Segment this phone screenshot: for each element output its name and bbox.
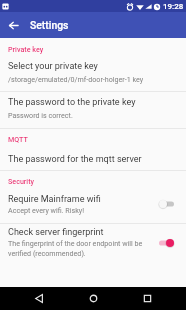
staticText: Settings — [30, 19, 69, 31]
button[interactable]: Require Mainframe wifi — [0, 194, 186, 214]
button[interactable]: Check server fingerprint — [0, 227, 186, 258]
button[interactable]: Home — [82, 287, 104, 309]
staticText: The fingerprint of the door endpoint wil… — [8, 239, 153, 258]
button[interactable]: Select your private key — [0, 61, 186, 83]
staticText: Select your private key — [8, 61, 98, 72]
staticText: Accept every wifi. Risky! — [8, 206, 84, 214]
staticText: Password is correct. — [8, 111, 73, 119]
button[interactable]: Back — [0, 12, 26, 38]
staticText: /storage/emulated/0/mf-door-holger-1 key — [8, 75, 144, 83]
staticText: Require Mainframe wifi — [8, 194, 101, 205]
button[interactable]: The password to the private key — [0, 97, 186, 119]
staticText: Check server fingerprint — [8, 227, 104, 238]
staticText: MQTT — [8, 135, 28, 143]
staticText: 19:28 — [163, 2, 184, 11]
staticText: The password for the mqtt server — [8, 154, 142, 165]
staticText: Security — [8, 177, 35, 185]
staticText: Private key — [8, 45, 44, 53]
button[interactable]: Recent apps — [136, 287, 158, 309]
staticText: The password to the private key — [8, 97, 136, 108]
button[interactable]: The password for the mqtt server — [0, 154, 186, 165]
button[interactable]: Back — [28, 287, 50, 309]
